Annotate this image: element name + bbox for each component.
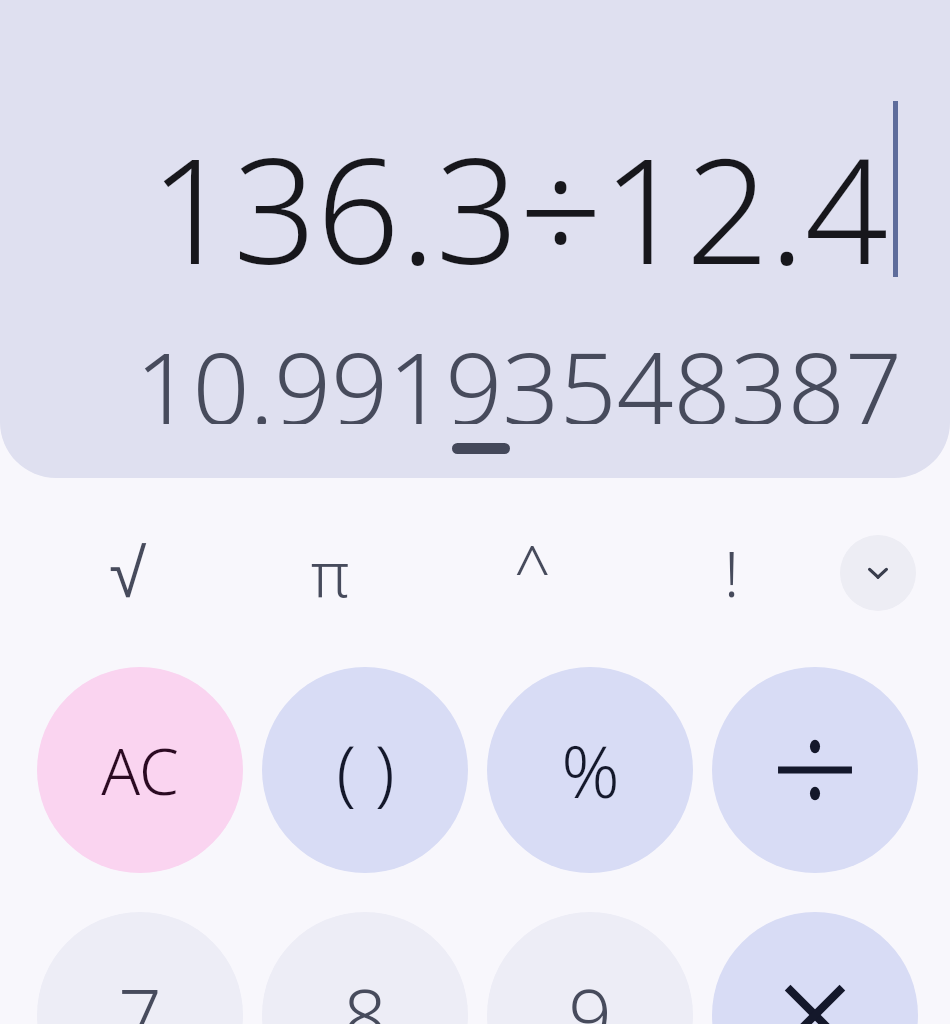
staticText: AC [101, 727, 179, 814]
button[interactable]: 7 [37, 912, 243, 1024]
button[interactable]: ( ) [262, 667, 468, 873]
button[interactable]: Square root [78, 523, 178, 623]
button[interactable]: % [487, 667, 693, 873]
button[interactable]: AC [37, 667, 243, 873]
staticText: ! [724, 531, 740, 615]
button[interactable]: Divide [712, 667, 918, 873]
staticText: ^ [514, 525, 551, 612]
button[interactable]: Expand [452, 443, 510, 454]
staticText: 8 [343, 963, 387, 1024]
button[interactable]: Pi [280, 523, 380, 623]
button[interactable]: Multiply [712, 912, 918, 1024]
staticText: 10.99193548387 [135, 318, 902, 424]
staticText: 136.3÷12.4 [149, 108, 888, 278]
staticText: 7 [118, 963, 162, 1024]
button[interactable]: More functions [840, 535, 916, 611]
staticText: % [561, 721, 620, 819]
button[interactable]: Factorial [682, 523, 782, 623]
button[interactable]: 9 [487, 912, 693, 1024]
staticText: √ [109, 535, 147, 611]
button[interactable]: 8 [262, 912, 468, 1024]
staticText: 9 [568, 963, 612, 1024]
staticText: ( ) [336, 721, 395, 819]
button[interactable]: Power [482, 518, 582, 618]
staticText: π [311, 531, 350, 615]
